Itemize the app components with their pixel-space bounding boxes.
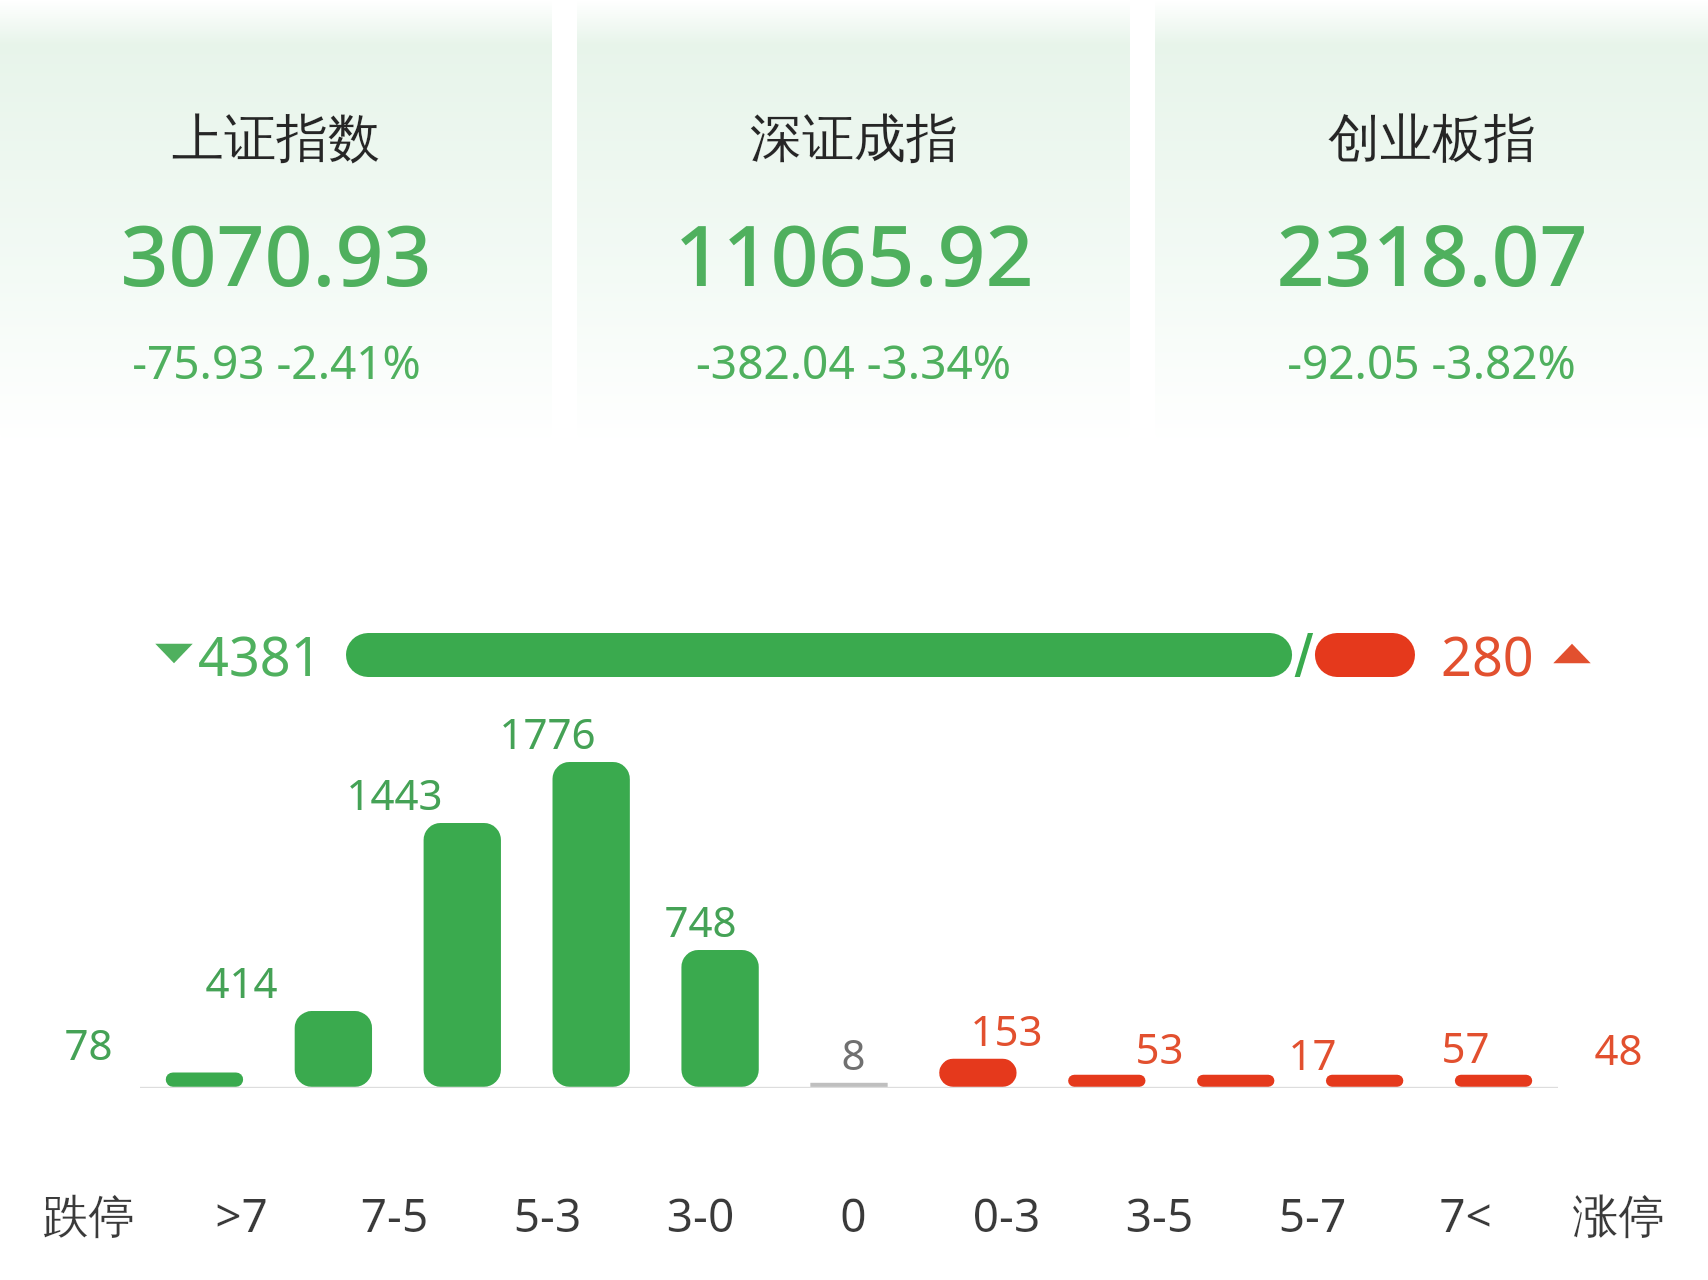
staticText: 57 <box>1389 1018 1542 1075</box>
staticText: 17 <box>1236 1025 1389 1082</box>
staticText: 深证成指 <box>750 106 958 172</box>
staticText: 11065.92 <box>674 196 1034 310</box>
staticText: 280 <box>1441 618 1534 692</box>
staticText: 3070.93 <box>120 196 432 310</box>
staticText: 78 <box>12 1015 165 1072</box>
staticText: 153 <box>930 1001 1083 1058</box>
button[interactable]: 深证成指 <box>577 0 1130 445</box>
staticText: 3-5 <box>1083 1183 1236 1246</box>
staticText: -92.05 -3.82% <box>1287 330 1576 393</box>
staticText: 53 <box>1083 1019 1236 1076</box>
staticText: 7< <box>1389 1183 1542 1246</box>
staticText: 1443 <box>318 765 471 822</box>
staticText: 涨停 <box>1542 1188 1695 1246</box>
staticText: 5-7 <box>1236 1183 1389 1246</box>
staticText: -75.93 -2.41% <box>132 330 421 393</box>
staticText: 0-3 <box>930 1183 1083 1246</box>
staticText: 48 <box>1542 1020 1695 1077</box>
staticText: 1776 <box>471 704 624 761</box>
staticText: 创业板指 <box>1328 106 1536 172</box>
button[interactable]: 创业板指 <box>1155 0 1708 445</box>
button[interactable]: 上证指数 <box>0 0 552 445</box>
staticText: 2318.07 <box>1276 196 1588 310</box>
staticText: -382.04 -3.34% <box>696 330 1011 393</box>
staticText: 7-5 <box>318 1183 471 1246</box>
staticText: 跌停 <box>12 1188 165 1246</box>
staticText: 上证指数 <box>172 106 380 172</box>
staticText: >7 <box>165 1183 318 1246</box>
staticText: 8 <box>777 1025 930 1082</box>
staticText: 5-3 <box>471 1183 624 1246</box>
staticText: 0 <box>777 1183 930 1246</box>
staticText: 748 <box>624 892 777 949</box>
staticText: 4381 <box>198 618 322 692</box>
button[interactable]: Advance decline ratio 4381 down 280 up <box>0 610 1708 700</box>
staticText: 3-0 <box>624 1183 777 1246</box>
button[interactable]: 78 <box>0 720 1708 1280</box>
staticText: 414 <box>165 953 318 1010</box>
